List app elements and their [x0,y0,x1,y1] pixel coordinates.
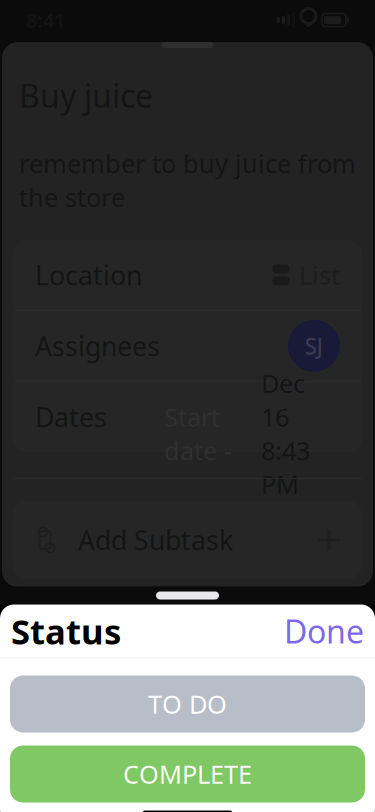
staticText: TO DO [148,687,227,721]
button[interactable]: Add Subtask [13,501,362,579]
staticText: Add Subtask [78,522,233,558]
button[interactable]: Dates [13,382,362,452]
staticText: Buy juice [19,74,153,117]
staticText: List [299,258,340,292]
button[interactable]: Done [260,604,364,658]
staticText: 8:43 PM [261,434,310,501]
staticText: Status [11,608,121,654]
button[interactable]: COMPLETE [10,745,365,802]
staticText: Dec 16 [261,366,305,434]
staticText: Assignees [35,328,160,364]
staticText: Location [35,257,142,293]
staticText: SJ [304,331,323,361]
staticText: remember to buy juice from the store [19,147,356,214]
staticText: 8:41 [26,7,65,33]
button[interactable]: TO DO [10,675,365,732]
staticText: Start date - [164,400,232,467]
staticText: Dates [35,399,107,435]
button[interactable]: Assignees [13,311,362,381]
staticText: COMPLETE [123,757,252,791]
staticText: Done [284,610,364,652]
